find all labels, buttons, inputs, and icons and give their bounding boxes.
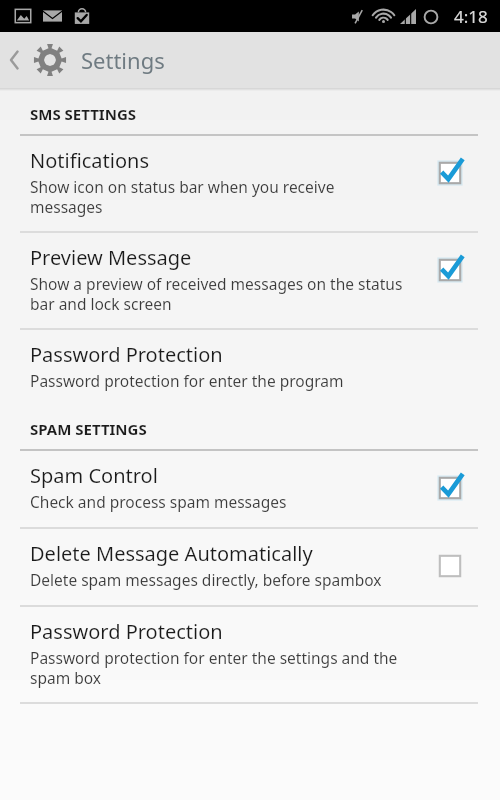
staticText: Settings	[81, 45, 165, 75]
staticText: Notifications	[30, 147, 149, 174]
staticText: Delete Message Automatically	[30, 540, 313, 567]
button[interactable]: Back	[0, 32, 28, 88]
staticText: Password protection for enter the settin…	[30, 647, 410, 689]
button[interactable]: Notifications	[0, 136, 500, 231]
staticText: Preview Message	[30, 244, 192, 271]
button[interactable]: Checked	[433, 471, 467, 505]
staticText: Spam Control	[30, 462, 158, 489]
button[interactable]: Checked	[433, 156, 467, 190]
staticText: SPAM SETTINGS	[30, 419, 147, 439]
button[interactable]: Preview Message	[0, 233, 500, 328]
button[interactable]: Password Protection	[0, 330, 500, 406]
button[interactable]: Unchecked	[433, 549, 467, 583]
button[interactable]: Checked	[433, 253, 467, 287]
button[interactable]: Delete Message Automatically	[0, 529, 500, 605]
staticText: Show icon on status bar when you receive…	[30, 176, 410, 218]
staticText: Check and process spam messages	[30, 491, 410, 512]
staticText: Show a preview of received messages on t…	[30, 273, 410, 315]
staticText: 4:18	[454, 5, 488, 28]
staticText: SMS SETTINGS	[30, 104, 137, 124]
staticText: Password Protection	[30, 341, 223, 368]
staticText: Password Protection	[30, 618, 223, 645]
button[interactable]: Settings icon	[28, 38, 72, 82]
button[interactable]: Password Protection	[0, 607, 500, 702]
staticText: Password protection for enter the progra…	[30, 370, 410, 391]
button[interactable]: Spam Control	[0, 451, 500, 527]
staticText: Delete spam messages directly, before sp…	[30, 569, 410, 590]
